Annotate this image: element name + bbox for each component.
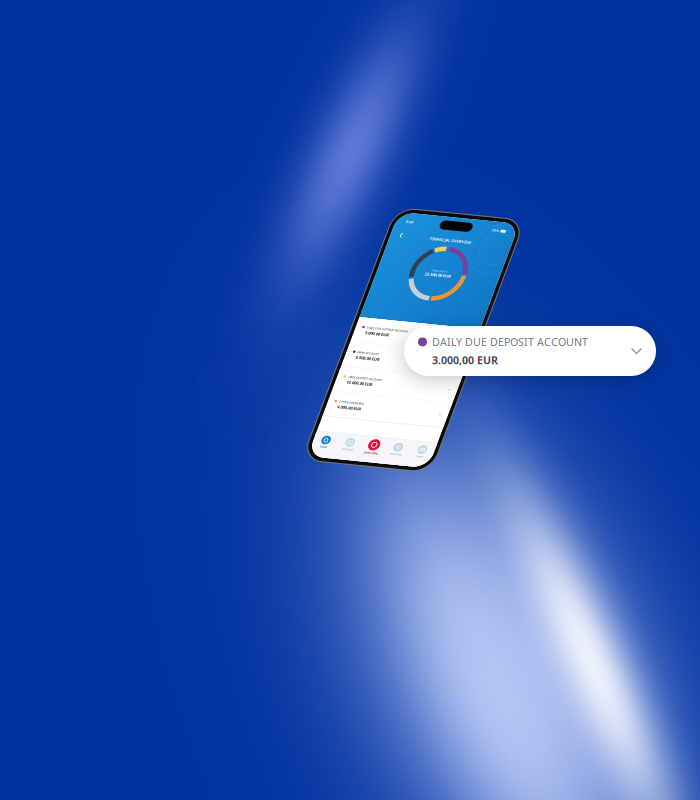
staticText: FINANCIAL OVERVIEW bbox=[500, 267, 597, 279]
button[interactable]: TRANSFERS bbox=[576, 759, 633, 790]
button[interactable]: CARDS bbox=[633, 759, 689, 790]
staticText: 4.000,00 EUR bbox=[432, 683, 488, 695]
button[interactable]: ACCOUNTS bbox=[463, 759, 520, 790]
button[interactable]: TIME DEPOSIT ACCOUNT bbox=[407, 594, 689, 654]
staticText: 13.000,00 EUR bbox=[432, 623, 493, 635]
staticText: 9:41 bbox=[431, 233, 449, 245]
button[interactable]: DAILY DUE DEPOSIT ACCOUNT bbox=[404, 326, 656, 376]
staticText: TOTAL ASSETS bbox=[530, 344, 567, 351]
staticText: DAILY DUE DEPOSIT ACCOUNT bbox=[432, 492, 529, 501]
button[interactable]: Back bbox=[419, 261, 445, 285]
button[interactable]: HOME bbox=[407, 759, 463, 790]
staticText: HOME bbox=[427, 783, 443, 790]
staticText: 3.000,00 EUR bbox=[432, 353, 498, 367]
staticText: CARDS bbox=[652, 783, 669, 790]
staticText: OTHER SPENDING bbox=[432, 672, 490, 681]
button[interactable]: BANK ACCOUNT bbox=[407, 534, 689, 594]
staticText: DAILY DUE DEPOSIT ACCOUNT bbox=[432, 335, 588, 349]
staticText: TIME DEPOSIT ACCOUNT bbox=[432, 612, 511, 621]
staticText: ACCOUNTS bbox=[478, 783, 505, 790]
button[interactable]: QUICK MENU bbox=[520, 756, 576, 793]
staticText: TRANSFERS bbox=[590, 783, 619, 790]
button[interactable]: OTHER SPENDING bbox=[407, 654, 689, 714]
button[interactable]: DAILY DUE DEPOSIT ACCOUNT bbox=[407, 474, 689, 534]
